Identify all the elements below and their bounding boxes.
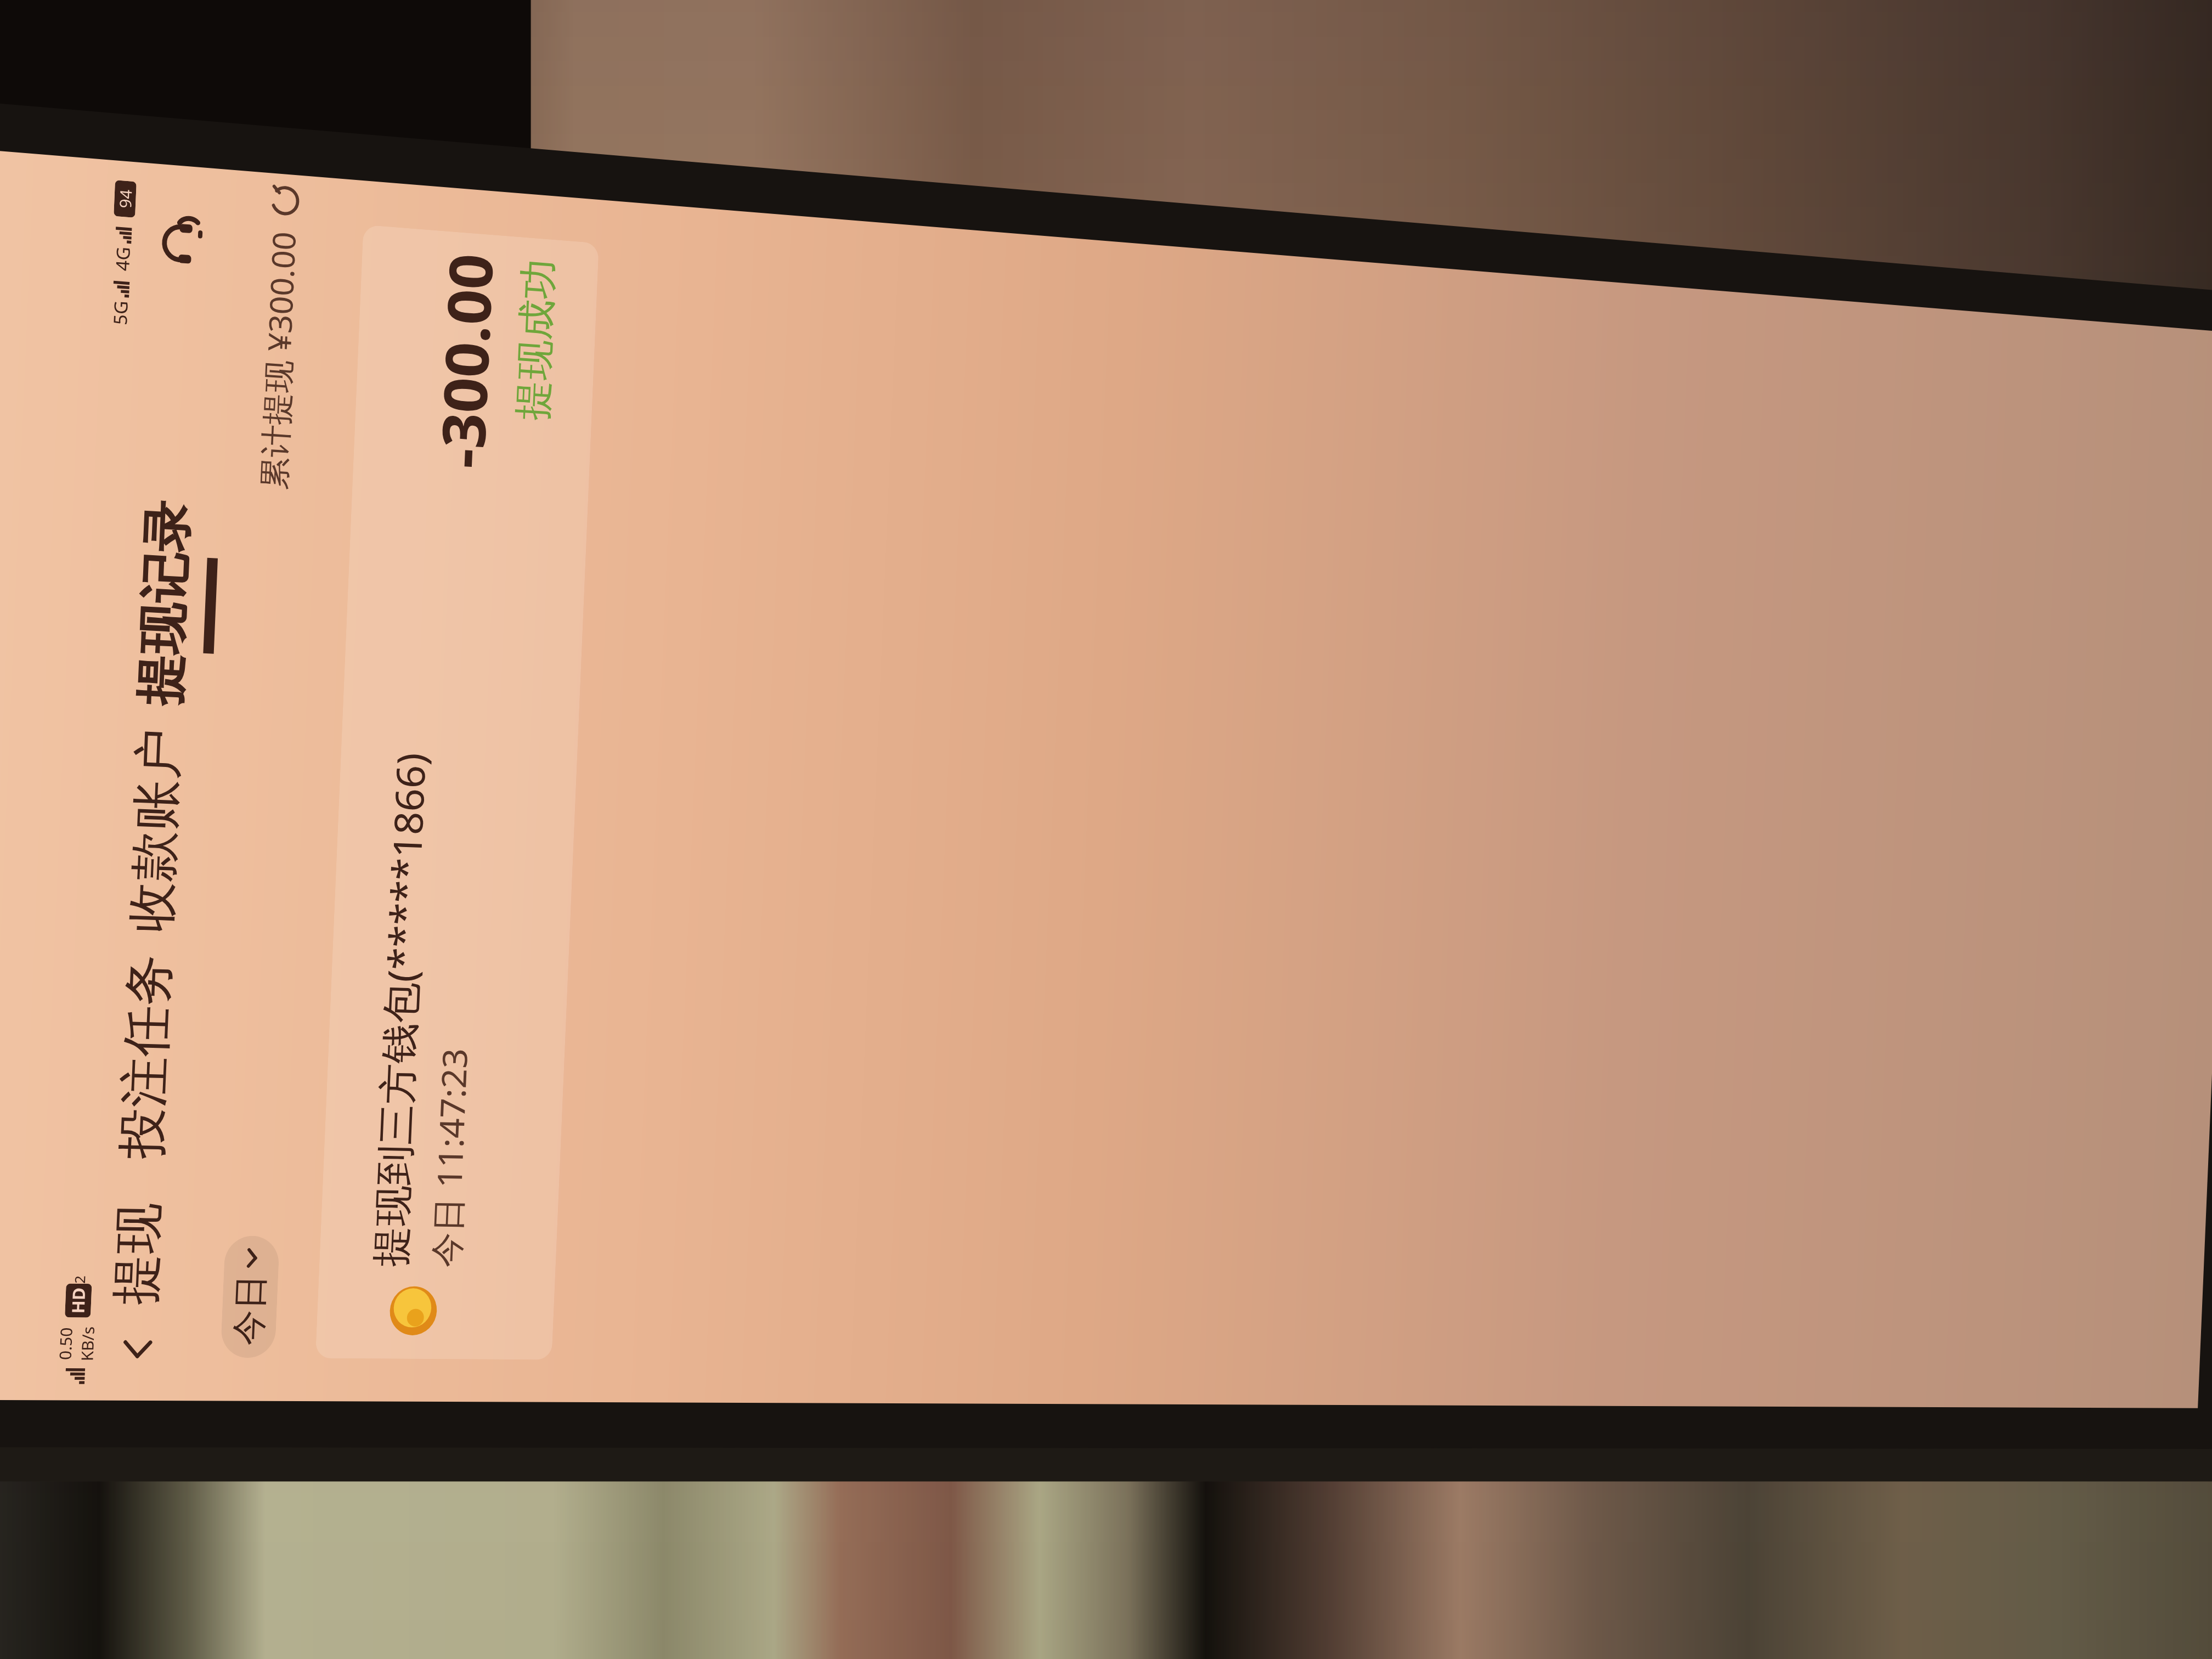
staticText: 2	[70, 1275, 89, 1284]
button[interactable]: 提现记录	[128, 488, 227, 720]
staticText: 收款账户	[120, 727, 191, 934]
staticText: 提现到三方钱包(*****1866)	[362, 752, 438, 1269]
staticText: 提现	[104, 1201, 171, 1307]
staticText: 今日	[227, 1273, 273, 1347]
staticText: 投注任务	[110, 953, 181, 1161]
staticText: 94	[114, 188, 136, 209]
button[interactable]: 投注任务	[109, 944, 208, 1171]
staticText: 4G	[110, 245, 135, 272]
button[interactable]: 今日	[220, 1234, 280, 1360]
staticText: 累计提现 ¥300.00	[251, 230, 305, 491]
staticText: 今日 11:47:23	[422, 1046, 477, 1269]
button[interactable]: 提现	[102, 1191, 198, 1318]
button[interactable]: Customer service	[146, 201, 222, 281]
staticText: HD	[66, 1287, 91, 1315]
button[interactable]: Back	[102, 1316, 173, 1382]
staticText: 提现记录	[129, 499, 201, 707]
staticText: KB/s	[76, 1325, 99, 1362]
staticText: 5G	[107, 299, 133, 326]
staticText: 提现成功	[508, 257, 564, 422]
staticText: 0.50	[54, 1326, 77, 1361]
button[interactable]: Refresh	[269, 184, 301, 218]
button[interactable]: 提现到三方钱包(*****1866)	[315, 225, 599, 1368]
button[interactable]: 收款账户	[118, 720, 218, 943]
staticText: -300.00	[420, 250, 510, 470]
